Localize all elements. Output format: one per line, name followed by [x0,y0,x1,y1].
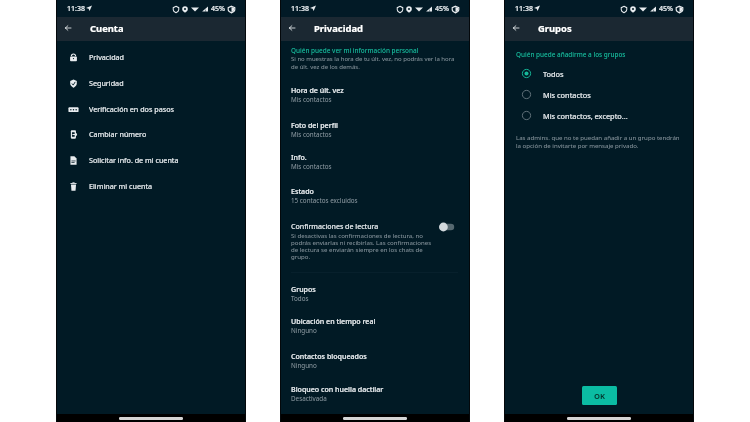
button[interactable]: Grupos [280,284,470,303]
staticText: Contactos bloqueados [291,351,367,361]
staticText: Ninguno [291,361,317,370]
staticText: Confirmaciones de lectura [291,221,379,231]
button[interactable]: Contactos bloqueados [280,351,470,370]
staticText: Grupos [538,22,572,35]
button[interactable]: Solicitar info. de mi cuenta [56,147,246,173]
staticText: Eliminar mi cuenta [89,181,153,191]
button[interactable]: Hora de últ. vez [280,85,470,104]
staticText: Cambiar número [89,129,147,139]
button[interactable]: Cambiar número [56,121,246,147]
button[interactable]: Foto del perfil [280,120,470,139]
staticText: Ninguno [291,326,317,335]
staticText: Info. [291,152,307,162]
staticText: Mis contactos [291,162,332,171]
button[interactable]: Mis contactos, excepto... [504,105,694,126]
staticText: Desactivada [291,394,327,403]
staticText: Las admins. que no te puedan añadir a un… [516,133,683,150]
staticText: Si no muestras la hora de tu últ. vez, n… [291,55,457,71]
staticText: Mis contactos [291,95,332,104]
staticText: Si desactivas las confirmaciones de lect… [291,231,435,260]
staticText: Todos [543,69,564,79]
staticText: Seguridad [89,78,124,88]
button[interactable]: Bloqueo con huella dactilar [280,384,470,403]
button[interactable]: OK [582,386,617,405]
button[interactable]: Privacidad [56,44,246,70]
button[interactable]: Mis contactos [504,84,694,105]
staticText: Hora de últ. vez [291,85,344,95]
staticText: OK [594,391,606,401]
staticText: 11:38 [515,4,533,14]
staticText: 45% [211,4,225,14]
staticText: Verificación en dos pasos [89,104,174,114]
staticText: Foto del perfil [291,120,339,130]
staticText: Cuenta [90,22,124,35]
button[interactable]: Back [59,19,77,37]
staticText: 15 contactos excluidos [291,196,358,205]
button[interactable]: Verificación en dos pasos [56,96,246,122]
staticText: Grupos [291,284,316,294]
button[interactable]: Confirmaciones de lectura [280,221,470,260]
staticText: 45% [435,4,449,14]
button[interactable]: Todos [504,63,694,84]
staticText: 11:38 [291,4,309,14]
staticText: Privacidad [314,22,363,35]
staticText: Solicitar info. de mi cuenta [89,155,179,165]
staticText: Todos [291,294,309,303]
staticText: Mis contactos [291,130,332,139]
staticText: Estado [291,186,314,196]
staticText: Mis contactos, excepto... [543,111,628,121]
button[interactable]: Confirmaciones de lectura [438,222,456,232]
staticText: 11:38 [67,4,85,14]
staticText: Quién puede ver mi información personal [291,46,419,55]
staticText: Privacidad [89,52,125,62]
staticText: Mis contactos [543,90,591,100]
button[interactable]: Back [283,19,301,37]
button[interactable]: Estado [280,186,470,205]
button[interactable]: Seguridad [56,70,246,96]
button[interactable]: Info. [280,152,470,171]
button[interactable]: Ubicación en tiempo real [280,316,470,335]
staticText: Bloqueo con huella dactilar [291,384,384,394]
button[interactable]: Back [507,19,525,37]
staticText: Quién puede añadirme a los grupos [516,50,626,59]
staticText: Ubicación en tiempo real [291,316,376,326]
staticText: 45% [659,4,673,14]
button[interactable]: Eliminar mi cuenta [56,173,246,199]
